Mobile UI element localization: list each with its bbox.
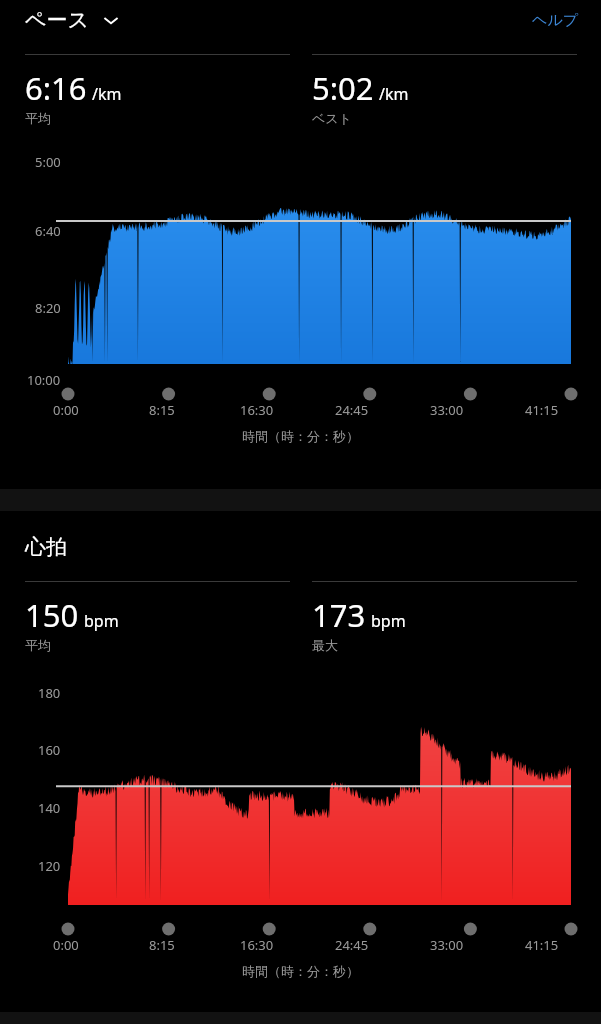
other: Change metric: [100, 9, 122, 31]
staticText: 平均: [25, 637, 51, 653]
staticText: 150: [25, 594, 79, 636]
button[interactable]: 5:02: [312, 54, 577, 126]
staticText: 16:30: [240, 936, 274, 954]
button[interactable]: 173: [312, 581, 577, 653]
staticText: 173: [312, 594, 366, 636]
button[interactable]: 150: [25, 581, 290, 653]
staticText: 41:15: [525, 401, 559, 419]
staticText: 5:00: [35, 153, 61, 171]
staticText: 時間（時：分：秒）: [242, 428, 359, 444]
staticText: 10:00: [27, 371, 61, 389]
staticText: bpm: [371, 610, 406, 632]
staticText: 8:20: [35, 299, 61, 317]
staticText: 140: [38, 799, 61, 817]
staticText: 160: [38, 741, 61, 759]
staticText: 平均: [25, 110, 51, 126]
staticText: 心拍: [25, 534, 67, 560]
staticText: 180: [38, 684, 61, 702]
staticText: 最大: [312, 637, 338, 653]
staticText: 33:00: [430, 401, 464, 419]
staticText: 8:15: [149, 401, 175, 419]
button[interactable]: 6:16: [25, 54, 290, 126]
staticText: bpm: [84, 610, 119, 632]
staticText: 120: [38, 857, 61, 875]
staticText: 6:40: [35, 222, 61, 240]
staticText: /km: [92, 83, 122, 105]
staticText: 0:00: [53, 401, 79, 419]
staticText: ヘルプ: [532, 11, 579, 30]
button[interactable]: ペース: [25, 7, 122, 33]
button[interactable]: ヘルプ: [532, 11, 579, 30]
staticText: ペース: [25, 7, 89, 33]
button[interactable]: 心拍: [25, 534, 67, 560]
staticText: /km: [379, 83, 409, 105]
staticText: 24:45: [335, 401, 369, 419]
staticText: 24:45: [335, 936, 369, 954]
staticText: 0:00: [53, 936, 79, 954]
staticText: 33:00: [430, 936, 464, 954]
staticText: 8:15: [149, 936, 175, 954]
staticText: ベスト: [312, 110, 352, 126]
staticText: 5:02: [312, 67, 374, 109]
staticText: 16:30: [240, 401, 274, 419]
staticText: 6:16: [25, 67, 87, 109]
staticText: 時間（時：分：秒）: [242, 963, 359, 979]
staticText: 41:15: [525, 936, 559, 954]
